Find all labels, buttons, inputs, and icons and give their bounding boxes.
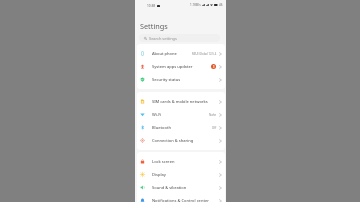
staticText: 1.1KB/s	[190, 3, 201, 7]
button[interactable]: System apps updater	[137, 60, 225, 73]
staticText: Lock screen	[152, 159, 175, 164]
staticText: Nahe	[209, 113, 217, 117]
staticText: Settings	[140, 21, 168, 31]
staticText: Security status	[152, 77, 181, 82]
button[interactable]: Security status	[137, 73, 225, 86]
staticText: MIUI Global 12.5.4	[192, 52, 217, 56]
button[interactable]: About phone	[137, 47, 225, 60]
staticText: Sound & vibration	[152, 185, 187, 190]
button[interactable]: Lock screen	[137, 155, 225, 168]
button[interactable]: Notifications & Control center	[137, 194, 225, 202]
staticText: 46	[219, 3, 223, 7]
button[interactable]: Bluetooth	[137, 121, 225, 134]
staticText: System apps updater	[152, 64, 193, 69]
button[interactable]: Sound & vibration	[137, 181, 225, 194]
staticText: Wi-Fi	[152, 112, 162, 117]
staticText: Notifications & Control center	[152, 198, 209, 202]
staticText: Bluetooth	[152, 125, 171, 130]
staticText: 1	[213, 65, 215, 69]
staticText: SIM cards & mobile networks	[152, 99, 208, 104]
staticText: Search settings	[149, 36, 177, 41]
staticText: Off	[212, 126, 217, 130]
staticText: 10:38	[147, 4, 156, 8]
button[interactable]: Connection & sharing	[137, 134, 225, 147]
button[interactable]: Display	[137, 168, 225, 181]
staticText: Connection & sharing	[152, 138, 194, 143]
button[interactable]: SIM cards & mobile networks	[137, 95, 225, 108]
staticText: Display	[152, 172, 166, 177]
button[interactable]: Wi-Fi	[137, 108, 225, 121]
staticText: About phone	[152, 51, 177, 56]
button[interactable]: Search settings	[139, 34, 220, 42]
